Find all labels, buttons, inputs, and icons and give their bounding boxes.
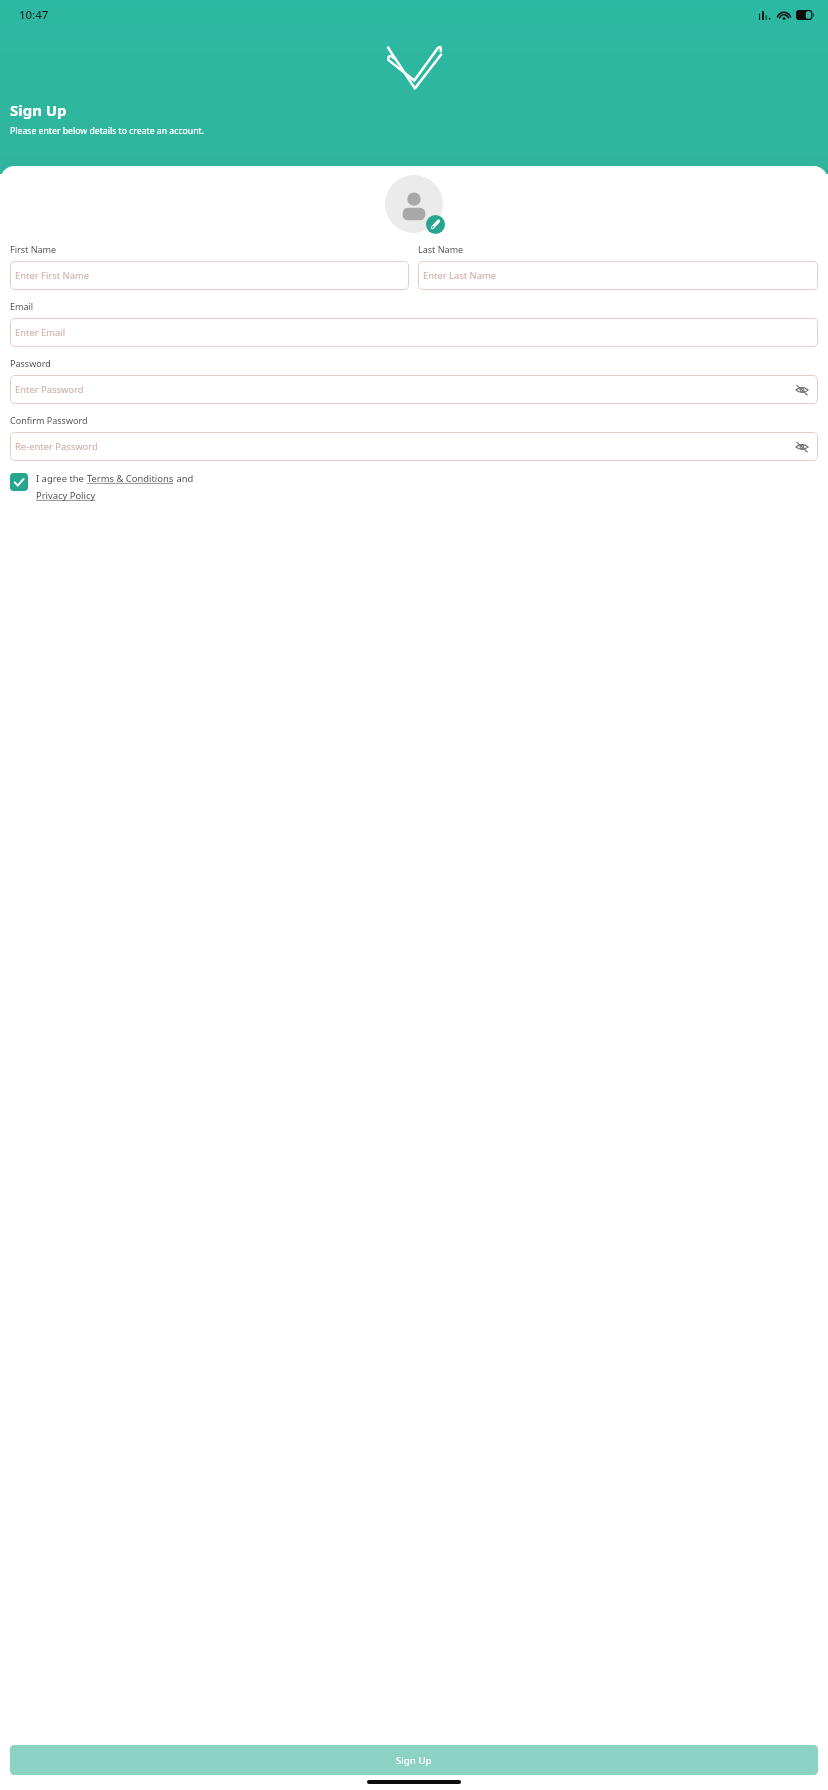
button[interactable]: Privacy Policy <box>36 489 96 502</box>
button[interactable]: Re-enter Password <box>10 432 818 461</box>
staticText: 10:47 <box>19 7 49 23</box>
button[interactable]: Show password <box>794 439 810 455</box>
button[interactable]: Show password <box>794 382 810 398</box>
button[interactable]: Enter Email <box>10 318 818 347</box>
staticText: Enter Last Name <box>423 269 497 282</box>
staticText: Enter First Name <box>15 269 90 282</box>
staticText: Sign Up <box>396 1754 432 1767</box>
button[interactable]: Sign Up <box>10 1745 818 1775</box>
staticText: Confirm Password <box>10 414 88 426</box>
staticText: First Name <box>10 243 57 255</box>
button[interactable]: Agree to terms <box>10 473 28 491</box>
button[interactable]: Edit profile photo <box>426 215 445 234</box>
staticText: and <box>174 472 194 485</box>
staticText: Enter Password <box>15 383 84 396</box>
staticText: Last Name <box>418 243 464 255</box>
button[interactable]: Enter Last Name <box>418 261 818 290</box>
staticText: Password <box>10 357 51 369</box>
staticText: I agree the <box>36 472 87 485</box>
button[interactable]: Enter First Name <box>10 261 409 290</box>
staticText: Enter Email <box>15 326 66 339</box>
staticText: Email <box>10 300 34 312</box>
staticText: Sign Up <box>10 100 67 120</box>
button[interactable]: Enter Password <box>10 375 818 404</box>
button[interactable]: Terms & Conditions <box>87 472 174 485</box>
staticText: Please enter below details to create an … <box>10 125 205 137</box>
staticText: Re-enter Password <box>15 440 98 453</box>
